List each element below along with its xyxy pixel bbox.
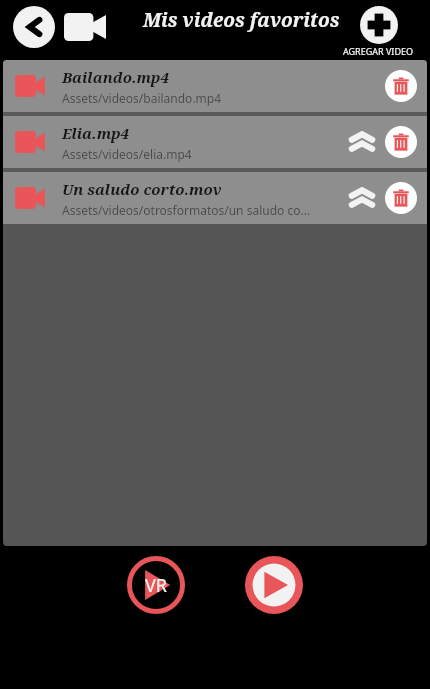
- button[interactable]: Delete: [385, 126, 417, 158]
- button[interactable]: Play in VR: [127, 556, 185, 614]
- staticText: Elia.mp4: [62, 123, 129, 143]
- button[interactable]: AGREGAR VIDEO: [343, 6, 414, 57]
- staticText: AGREGAR VIDEO: [343, 45, 414, 57]
- button[interactable]: Move up: [343, 123, 381, 161]
- staticText: Assets/videos/otrosformatos/un saludo co…: [62, 202, 310, 218]
- staticText: Assets/videos/elia.mp4: [62, 146, 192, 162]
- staticText: VR: [145, 573, 167, 598]
- button[interactable]: Back: [13, 6, 55, 48]
- button[interactable]: Move up: [343, 179, 381, 217]
- button[interactable]: Elia.mp4: [3, 116, 427, 168]
- staticText: Mis videos favoritos: [143, 7, 340, 33]
- button[interactable]: Delete: [385, 70, 417, 102]
- button[interactable]: Record video: [64, 13, 106, 41]
- button[interactable]: Play: [245, 556, 303, 614]
- staticText: Bailando.mp4: [62, 67, 169, 87]
- button[interactable]: Delete: [385, 182, 417, 214]
- staticText: Assets/videos/bailando.mp4: [62, 90, 222, 106]
- button[interactable]: Bailando.mp4: [3, 60, 427, 112]
- staticText: Un saludo corto.mov: [62, 179, 222, 199]
- button[interactable]: Un saludo corto.mov: [3, 172, 427, 224]
